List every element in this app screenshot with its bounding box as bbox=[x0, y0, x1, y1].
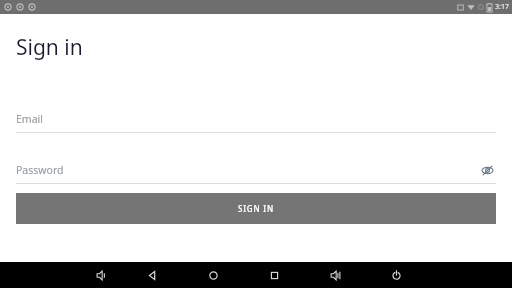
button[interactable]: Back bbox=[141, 264, 163, 286]
button[interactable]: Volume up bbox=[324, 264, 346, 286]
button[interactable]: Volume down bbox=[90, 264, 112, 286]
staticText: Sign in bbox=[16, 33, 83, 62]
button[interactable]: Power bbox=[385, 264, 407, 286]
button[interactable]: Show password bbox=[478, 161, 496, 179]
button[interactable]: Email bbox=[16, 109, 496, 129]
staticText: Email bbox=[16, 112, 43, 126]
staticText: Password bbox=[16, 163, 64, 177]
button[interactable]: Recents bbox=[263, 264, 285, 286]
button[interactable]: Home bbox=[202, 264, 224, 286]
button[interactable]: Password bbox=[16, 160, 496, 180]
button[interactable]: SIGN IN bbox=[16, 193, 496, 224]
staticText: SIGN IN bbox=[238, 203, 274, 214]
staticText: 3:17 bbox=[495, 2, 509, 12]
